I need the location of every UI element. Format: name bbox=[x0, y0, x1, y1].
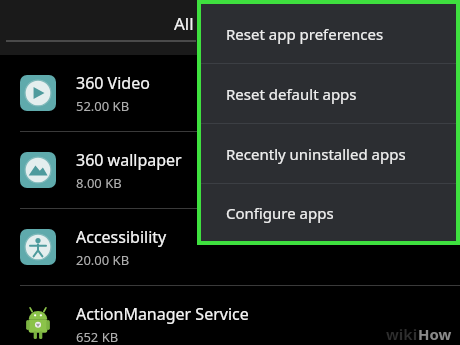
staticText: 8.00 KB bbox=[76, 174, 122, 192]
button[interactable]: Reset app preferences bbox=[201, 4, 456, 63]
staticText: 52.00 KB bbox=[76, 97, 130, 115]
staticText: Reset app preferences bbox=[226, 24, 384, 44]
staticText: Configure apps bbox=[226, 203, 334, 223]
button[interactable]: Accessibility bbox=[0, 209, 460, 285]
button[interactable]: ActionManager Service bbox=[0, 286, 460, 345]
staticText: 360 Video bbox=[76, 72, 150, 94]
staticText: Recently uninstalled apps bbox=[226, 144, 406, 164]
staticText: How bbox=[418, 324, 452, 344]
staticText: 652 KB bbox=[76, 328, 119, 345]
button[interactable]: 360 Video bbox=[0, 55, 460, 131]
button[interactable]: Recently uninstalled apps bbox=[201, 124, 456, 183]
button[interactable]: 360 wallpaper bbox=[0, 132, 460, 208]
staticText: 360 wallpaper bbox=[76, 149, 182, 171]
staticText: Reset default apps bbox=[226, 84, 357, 104]
staticText: All bbox=[174, 12, 194, 35]
button[interactable]: Reset default apps bbox=[201, 64, 456, 123]
staticText: wiki bbox=[386, 324, 418, 344]
staticText: ActionManager Service bbox=[76, 303, 249, 325]
button[interactable]: Configure apps bbox=[201, 184, 456, 241]
staticText: 20.00 KB bbox=[76, 251, 130, 269]
staticText: Accessibility bbox=[76, 226, 167, 248]
